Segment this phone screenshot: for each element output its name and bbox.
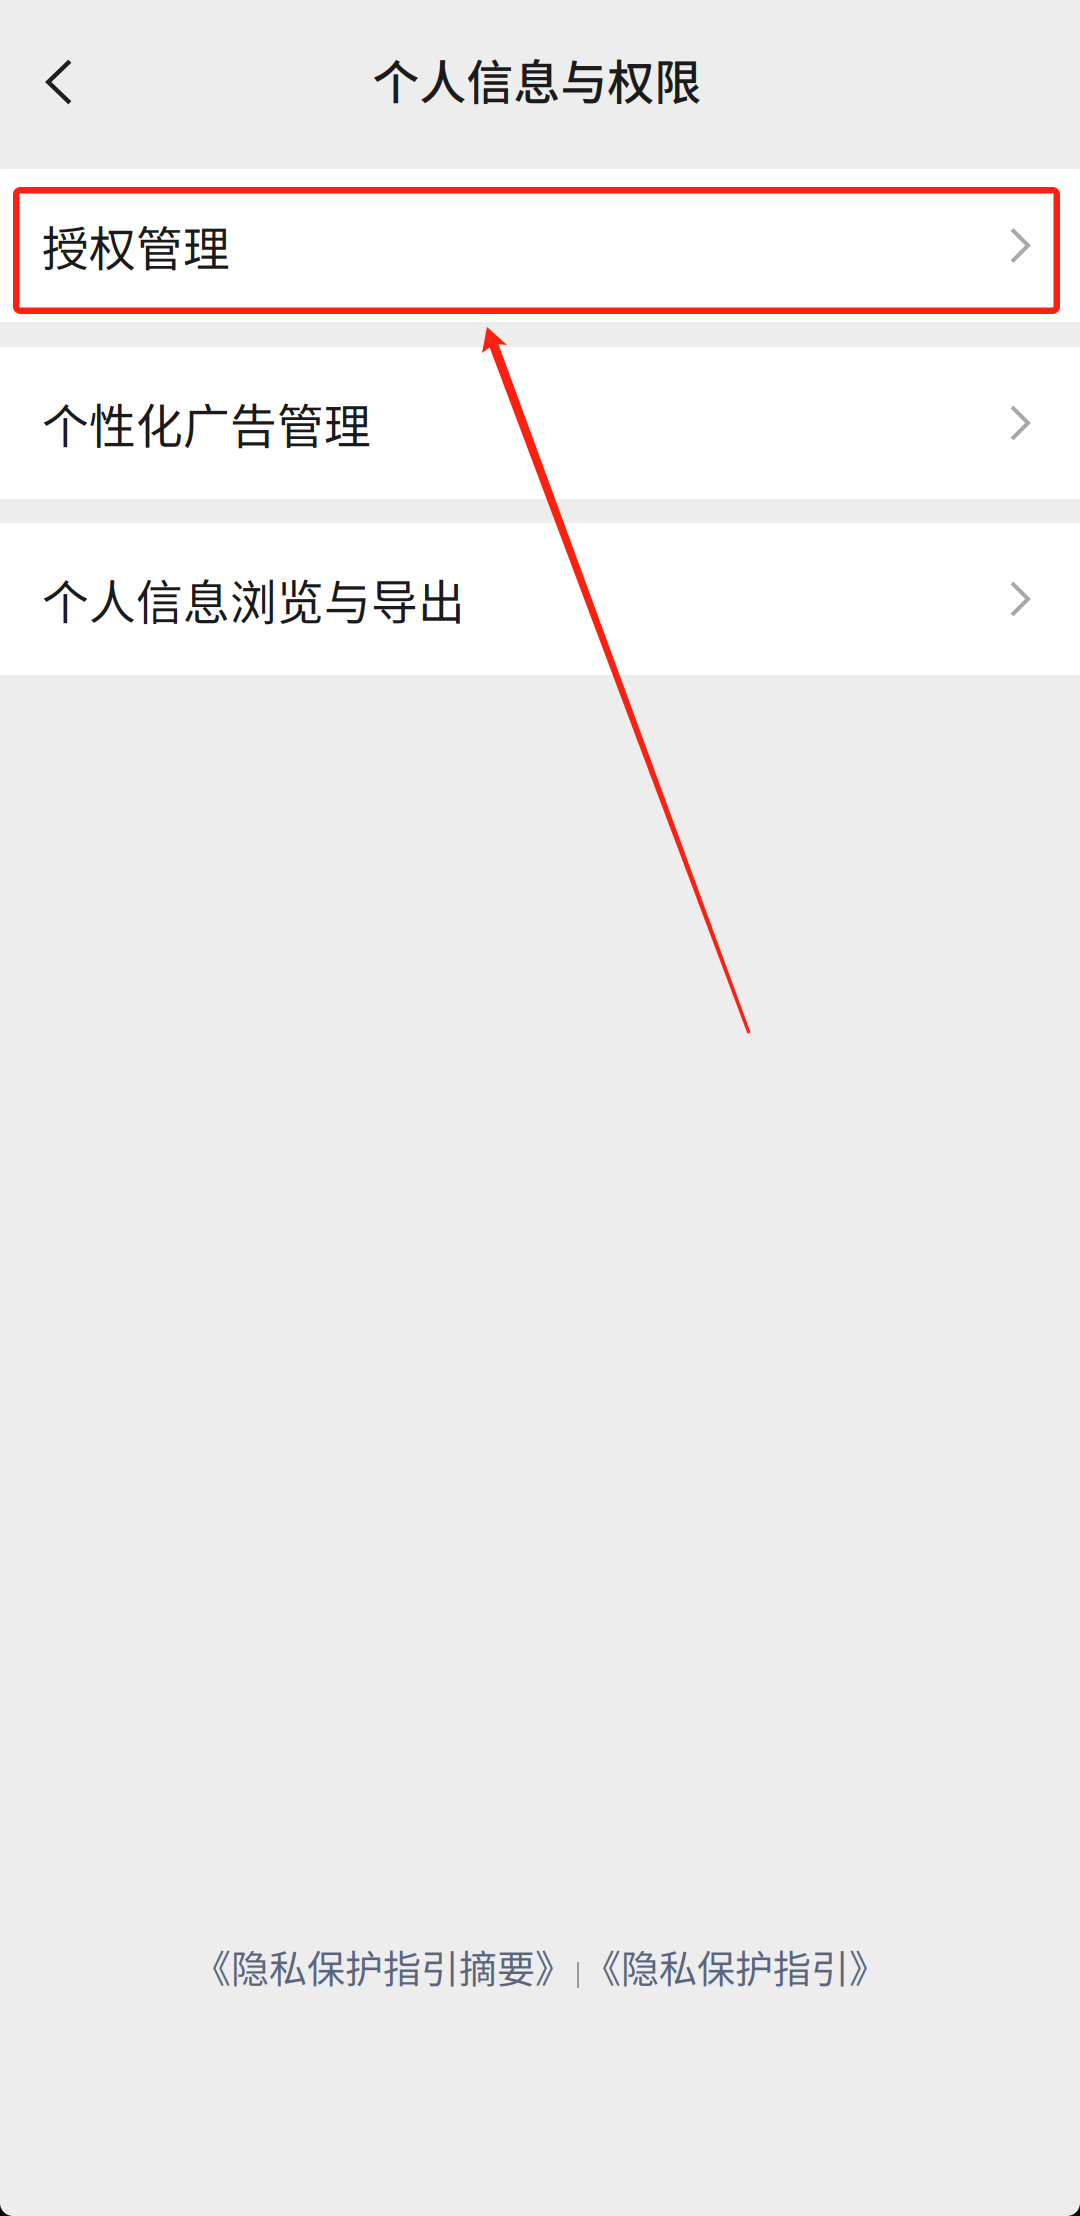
staticText: 《隐私保护指引摘要》: [193, 1938, 573, 1993]
staticText: 授权管理: [42, 212, 230, 279]
button[interactable]: 《隐私保护指引摘要》: [193, 1938, 573, 1993]
button[interactable]: 授权管理: [0, 169, 1080, 322]
button[interactable]: Back: [0, 29, 108, 139]
staticText: 个人信息与权限: [372, 45, 701, 113]
staticText: 个性化广告管理: [42, 389, 371, 457]
staticText: 个人信息浏览与导出: [42, 565, 465, 633]
staticText: 《隐私保护指引》: [583, 1938, 887, 1993]
button[interactable]: 个性化广告管理: [0, 347, 1080, 499]
button[interactable]: 《隐私保护指引》: [583, 1938, 887, 1993]
button[interactable]: 个人信息浏览与导出: [0, 523, 1080, 675]
